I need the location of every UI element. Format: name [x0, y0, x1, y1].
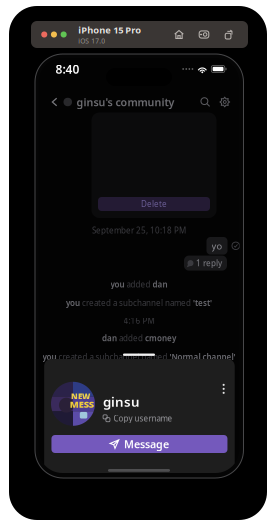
- button[interactable]: Back: [45, 93, 63, 110]
- button[interactable]: Delete: [98, 197, 210, 211]
- staticText: 1 reply: [196, 258, 222, 268]
- button[interactable]: Screenshot: [191, 30, 216, 39]
- button[interactable]: Settings: [214, 93, 230, 111]
- staticText: ginsu: [103, 393, 140, 410]
- staticText: added: [126, 279, 152, 290]
- staticText: yo: [211, 240, 222, 252]
- staticText: created a subchannel named: [58, 351, 169, 362]
- button[interactable]: More options: [217, 382, 231, 402]
- staticText: created a subchannel named: [82, 298, 193, 308]
- staticText: iOS 17.0: [78, 36, 105, 45]
- staticText: added: [119, 333, 145, 343]
- staticText: cmoney: [145, 333, 176, 343]
- button[interactable]: Message: [51, 435, 227, 453]
- staticText: dan: [102, 333, 119, 343]
- staticText: 4:16 PM: [123, 315, 154, 326]
- staticText: dan: [152, 279, 167, 290]
- button[interactable]: Rotate: [216, 30, 241, 39]
- button[interactable]: Home: [166, 30, 191, 39]
- button[interactable]: ginsu's community: [63, 91, 174, 113]
- button[interactable]: 1 reply: [184, 256, 227, 271]
- staticText: 'Normal channel': [169, 351, 235, 362]
- button[interactable]: Copy username: [103, 413, 172, 424]
- staticText: Copy username: [113, 413, 172, 424]
- staticText: you: [42, 351, 58, 362]
- staticText: iPhone 15 Pro: [78, 24, 141, 36]
- staticText: Delete: [141, 199, 167, 209]
- staticText: September 25, 10:18 PM: [92, 225, 186, 236]
- staticText: you: [110, 279, 126, 290]
- staticText: NEW: [71, 391, 90, 402]
- button[interactable]: Search: [196, 93, 214, 111]
- staticText: 8:40: [55, 61, 79, 77]
- staticText: ginsu's community: [76, 95, 174, 109]
- staticText: Message: [124, 437, 169, 451]
- staticText: you: [66, 298, 82, 308]
- staticText: 'test': [193, 298, 212, 308]
- staticText: MESS: [70, 398, 94, 410]
